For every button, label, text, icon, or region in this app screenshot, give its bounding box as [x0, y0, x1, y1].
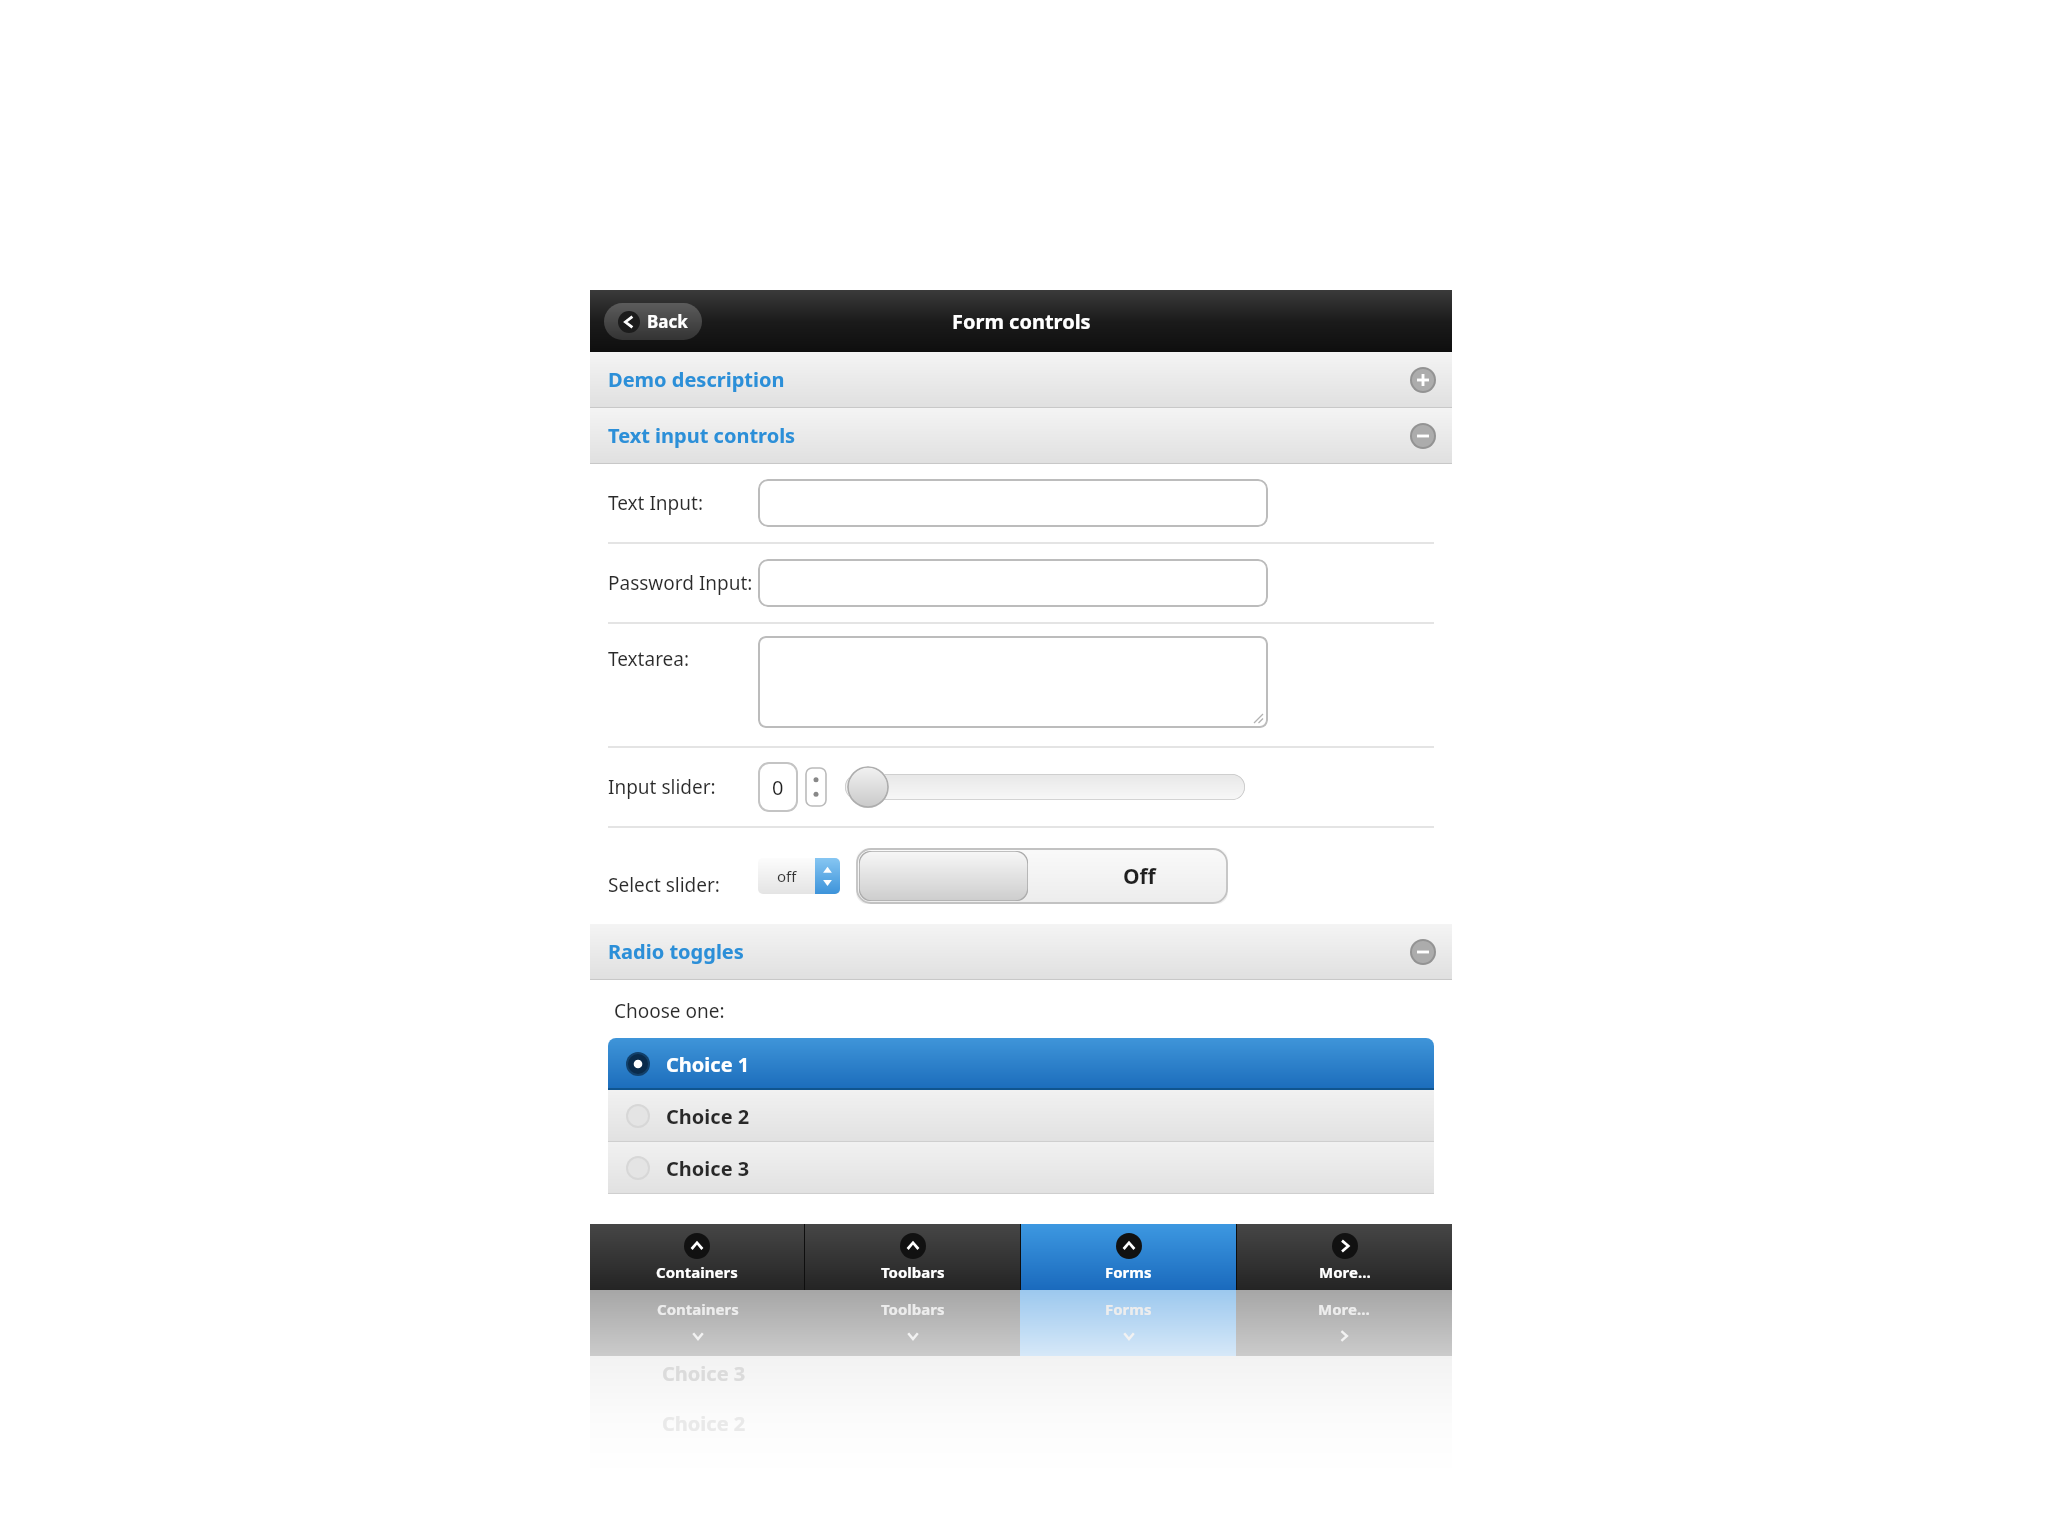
- staticText: Toolbars: [881, 1262, 945, 1282]
- staticText: Choice 3: [666, 1155, 750, 1182]
- staticText: Textarea:: [608, 646, 690, 672]
- button[interactable]: Back: [604, 303, 702, 340]
- button[interactable]: off: [758, 858, 840, 894]
- button[interactable]: Containers: [590, 1224, 804, 1290]
- staticText: Off: [1123, 862, 1156, 891]
- staticText: Demo description: [608, 366, 785, 393]
- button[interactable]: Toolbars: [805, 1224, 1020, 1290]
- staticText: Select slider:: [608, 872, 720, 898]
- button[interactable]: Choice 1: [608, 1038, 1434, 1090]
- button[interactable]: Radio toggles: [590, 924, 1452, 979]
- staticText: Forms: [1105, 1299, 1152, 1319]
- staticText: Containers: [657, 1299, 739, 1319]
- staticText: More…: [1319, 1262, 1371, 1282]
- staticText: Toolbars: [881, 1299, 945, 1319]
- button[interactable]: Text input controls: [590, 408, 1452, 463]
- staticText: Form controls: [952, 308, 1091, 335]
- staticText: Choice 2: [662, 1410, 746, 1437]
- staticText: 0: [772, 774, 784, 801]
- button[interactable]: Choice 2: [608, 1090, 1434, 1142]
- staticText: Password Input:: [608, 570, 753, 596]
- button[interactable]: [758, 479, 1268, 527]
- staticText: Back: [647, 310, 688, 333]
- button[interactable]: Increment or decrement: [805, 767, 827, 807]
- staticText: Choice 1: [666, 1051, 750, 1078]
- other: Collapse section: [1410, 939, 1436, 965]
- other: Collapse section: [1410, 423, 1436, 449]
- button[interactable]: Choice 3: [608, 1142, 1434, 1194]
- other: Expand section: [1410, 367, 1436, 393]
- staticText: Radio toggles: [608, 938, 744, 965]
- staticText: More…: [1318, 1299, 1370, 1319]
- staticText: Text Input:: [608, 490, 703, 516]
- button[interactable]: Forms: [1021, 1224, 1236, 1290]
- button[interactable]: Demo description: [590, 352, 1452, 407]
- staticText: off: [777, 866, 797, 886]
- staticText: Choose one:: [614, 998, 725, 1024]
- staticText: Input slider:: [608, 774, 716, 800]
- staticText: Forms: [1105, 1262, 1152, 1282]
- button[interactable]: [758, 636, 1268, 728]
- button[interactable]: 0: [758, 762, 798, 812]
- staticText: Choice 2: [666, 1103, 750, 1130]
- button[interactable]: Input slider: [845, 765, 1245, 809]
- button[interactable]: More…: [1237, 1224, 1452, 1290]
- staticText: Text input controls: [608, 422, 796, 449]
- staticText: Choice 3: [662, 1360, 746, 1387]
- button[interactable]: [758, 559, 1268, 607]
- button[interactable]: Off: [856, 848, 1228, 904]
- staticText: Containers: [656, 1262, 738, 1282]
